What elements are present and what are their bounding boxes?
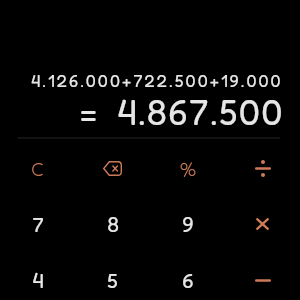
button[interactable]: Clear — [0, 140, 75, 196]
staticText: 4.867.500 — [117, 90, 284, 134]
staticText: 7 — [32, 212, 44, 237]
staticText: 6 — [182, 268, 194, 293]
staticText: 9 — [182, 212, 194, 237]
button[interactable]: Multiply — [225, 196, 300, 252]
staticText: C — [31, 157, 44, 180]
staticText: 4.126.000+722.500+19.000 — [31, 70, 283, 91]
button[interactable]: % — [150, 140, 225, 196]
staticText: = — [80, 90, 97, 134]
staticText: 5 — [107, 268, 118, 293]
other: Divide — [255, 160, 271, 177]
button[interactable]: Backspace — [75, 140, 150, 196]
staticText: 4 — [32, 268, 44, 293]
other: Backspace — [103, 161, 122, 176]
button[interactable]: Subtract — [225, 252, 300, 300]
other: Subtract — [255, 279, 271, 282]
staticText: % — [180, 157, 196, 180]
staticText: 8 — [107, 212, 119, 237]
button[interactable]: 9 — [150, 196, 225, 252]
button[interactable]: 4 — [0, 252, 75, 300]
button[interactable]: Divide — [225, 140, 300, 196]
button[interactable]: 5 — [75, 252, 150, 300]
button[interactable]: 7 — [0, 196, 75, 252]
button[interactable]: 8 — [75, 196, 150, 252]
button[interactable]: 6 — [150, 252, 225, 300]
other: Multiply — [256, 218, 269, 230]
